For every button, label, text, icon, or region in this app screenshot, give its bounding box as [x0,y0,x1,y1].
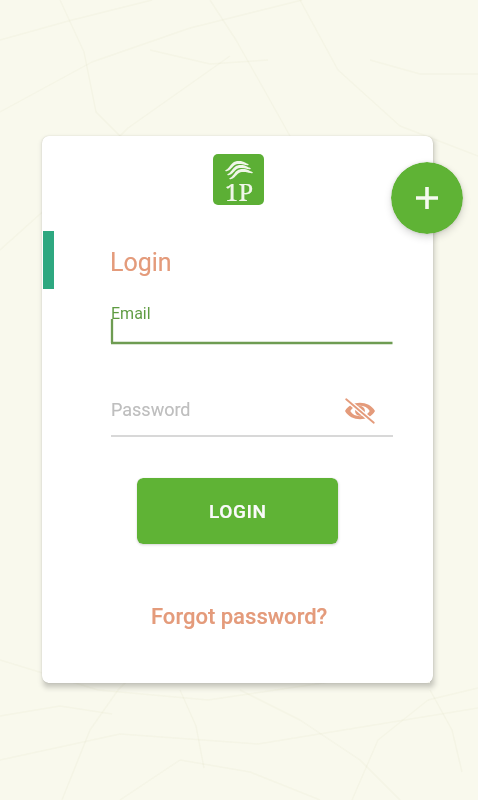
button[interactable]: Password input [108,390,393,440]
button[interactable]: Add [391,162,463,234]
staticText: Login [110,248,172,277]
button[interactable]: LOGIN [137,478,338,544]
staticText: 1P [225,175,253,205]
button[interactable]: Forgot password? [140,600,339,634]
staticText: Password [111,399,191,420]
button[interactable]: Toggle password visibility [341,391,379,431]
button[interactable]: Email input [100,300,400,350]
staticText: LOGIN [209,500,267,522]
staticText: Forgot password? [151,604,328,630]
staticText: Email [111,304,151,323]
